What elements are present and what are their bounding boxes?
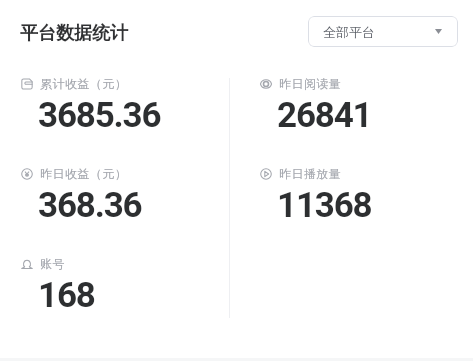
other: Yesterday plays bbox=[260, 168, 272, 180]
button[interactable]: Yesterday earnings bbox=[20, 160, 220, 222]
staticText: 累计收益（元） bbox=[40, 76, 128, 91]
other: Accounts bbox=[21, 258, 33, 270]
button[interactable]: Cumulative earnings bbox=[20, 70, 220, 132]
other: Cumulative earnings bbox=[21, 78, 33, 90]
staticText: 昨日播放量 bbox=[279, 166, 342, 181]
staticText: 11368 bbox=[277, 185, 372, 226]
staticText: 昨日阅读量 bbox=[279, 76, 342, 91]
staticText: 26841 bbox=[277, 95, 372, 136]
button[interactable]: Yesterday reads bbox=[259, 70, 459, 132]
staticText: 168 bbox=[38, 275, 95, 316]
other: Yesterday earnings bbox=[21, 168, 33, 180]
staticText: 昨日收益（元） bbox=[40, 166, 128, 181]
staticText: 全部平台 bbox=[323, 24, 375, 40]
staticText: 账号 bbox=[40, 256, 65, 271]
button[interactable]: 全部平台 bbox=[308, 16, 458, 47]
button[interactable]: Yesterday plays bbox=[259, 160, 459, 222]
staticText: 3685.36 bbox=[38, 95, 161, 136]
staticText: 平台数据统计 bbox=[20, 22, 128, 45]
button[interactable]: Accounts bbox=[20, 250, 220, 312]
other: Yesterday reads bbox=[260, 78, 272, 90]
staticText: 368.36 bbox=[38, 185, 142, 226]
